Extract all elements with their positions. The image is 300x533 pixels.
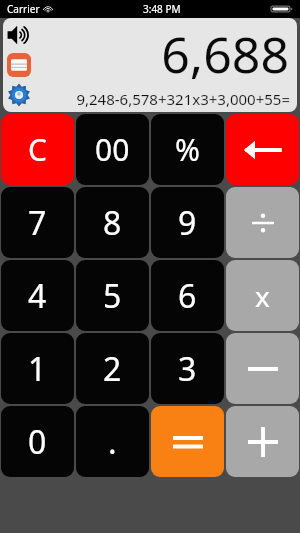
button[interactable]: 8	[76, 187, 149, 258]
staticText: 4	[28, 274, 47, 318]
button[interactable]: Plus	[226, 406, 299, 477]
staticText: 0	[28, 420, 47, 464]
staticText: C	[28, 129, 47, 170]
staticText: 1	[28, 347, 47, 391]
button[interactable]: 6	[151, 260, 224, 331]
staticText: 00	[95, 129, 130, 170]
button[interactable]: Divide	[226, 187, 299, 258]
button[interactable]: 7	[1, 187, 74, 258]
button[interactable]: Backspace	[226, 114, 299, 185]
staticText: .	[108, 420, 117, 464]
button[interactable]: Sound	[4, 20, 34, 50]
staticText: 7	[28, 201, 47, 245]
button[interactable]: 1	[1, 333, 74, 404]
button[interactable]: History	[4, 50, 34, 80]
button[interactable]: 3	[151, 333, 224, 404]
button[interactable]: x	[226, 260, 299, 331]
button[interactable]: Equals	[151, 406, 224, 477]
staticText: 8	[103, 201, 122, 245]
button[interactable]: 9	[151, 187, 224, 258]
staticText: 5	[103, 274, 122, 318]
staticText: 2	[103, 347, 122, 391]
button[interactable]: Minus	[226, 333, 299, 404]
staticText: 6,688	[161, 20, 289, 88]
staticText: 6	[178, 274, 197, 318]
staticText: 9	[178, 201, 197, 245]
staticText: Carrier	[7, 2, 40, 16]
button[interactable]: C	[1, 114, 74, 185]
button[interactable]: 2	[76, 333, 149, 404]
button[interactable]: 4	[1, 260, 74, 331]
button[interactable]: Settings	[4, 80, 34, 110]
staticText: %	[175, 129, 200, 170]
button[interactable]: 5	[76, 260, 149, 331]
button[interactable]: 0	[1, 406, 74, 477]
staticText: 9,248-6,578+321x3+3,000+55=	[76, 89, 290, 109]
button[interactable]: %	[151, 114, 224, 185]
button[interactable]: .	[76, 406, 149, 477]
staticText: 3:48 PM	[143, 2, 181, 16]
staticText: 3	[178, 347, 197, 391]
button[interactable]: 00	[76, 114, 149, 185]
staticText: x	[255, 277, 270, 315]
